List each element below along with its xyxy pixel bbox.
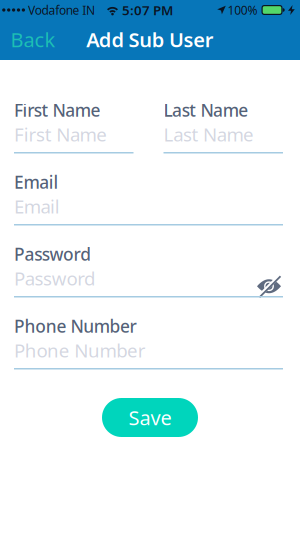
button[interactable]: Phone Number [14,340,283,369]
button[interactable]: Password [14,268,283,297]
staticText: First Name [14,98,100,121]
staticText: Save [128,404,171,431]
button[interactable]: Email [14,196,283,225]
button[interactable]: Save [100,398,196,437]
staticText: Back [10,26,55,53]
staticText: 5:07 PM [122,1,173,19]
staticText: Phone Number [14,338,146,363]
staticText: 100% [228,2,257,18]
staticText: Email [14,170,58,193]
button[interactable]: First Name [14,124,133,153]
staticText: Add Sub User [86,26,214,53]
staticText: Vodafone IN [28,2,95,18]
staticText: Password [14,242,91,265]
staticText: Phone Number [14,314,137,337]
button[interactable]: Back [10,26,55,53]
button[interactable] [256,275,282,297]
staticText: Last Name [163,98,248,121]
staticText: Password [14,266,95,291]
staticText: Email [14,194,60,219]
staticText: Last Name [163,122,254,147]
staticText: First Name [14,122,107,147]
button[interactable]: Last Name [163,124,283,153]
